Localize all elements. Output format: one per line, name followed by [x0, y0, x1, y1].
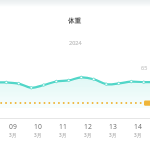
staticText: 3月 [84, 132, 92, 138]
staticText: 09 [9, 122, 17, 131]
staticText: 65 [141, 64, 148, 71]
staticText: 14 [134, 122, 142, 131]
staticText: 12 [84, 122, 92, 131]
staticText: 3月 [134, 132, 142, 138]
button[interactable]: 12 [75, 122, 100, 137]
staticText: 3月 [9, 132, 17, 138]
staticText: 3月 [59, 132, 67, 138]
button[interactable]: 09 [0, 122, 25, 137]
button[interactable]: 14 [125, 122, 150, 137]
staticText: 11 [59, 122, 67, 131]
staticText: 2024 [69, 39, 82, 46]
staticText: 10 [34, 122, 42, 131]
button[interactable]: 10 [25, 122, 50, 137]
staticText: 3月 [34, 132, 42, 138]
staticText: 3月 [109, 132, 117, 138]
staticText: 体重 [68, 17, 82, 25]
staticText: 13 [109, 122, 117, 131]
button[interactable]: 11 [50, 122, 75, 137]
button[interactable]: 13 [100, 122, 125, 137]
